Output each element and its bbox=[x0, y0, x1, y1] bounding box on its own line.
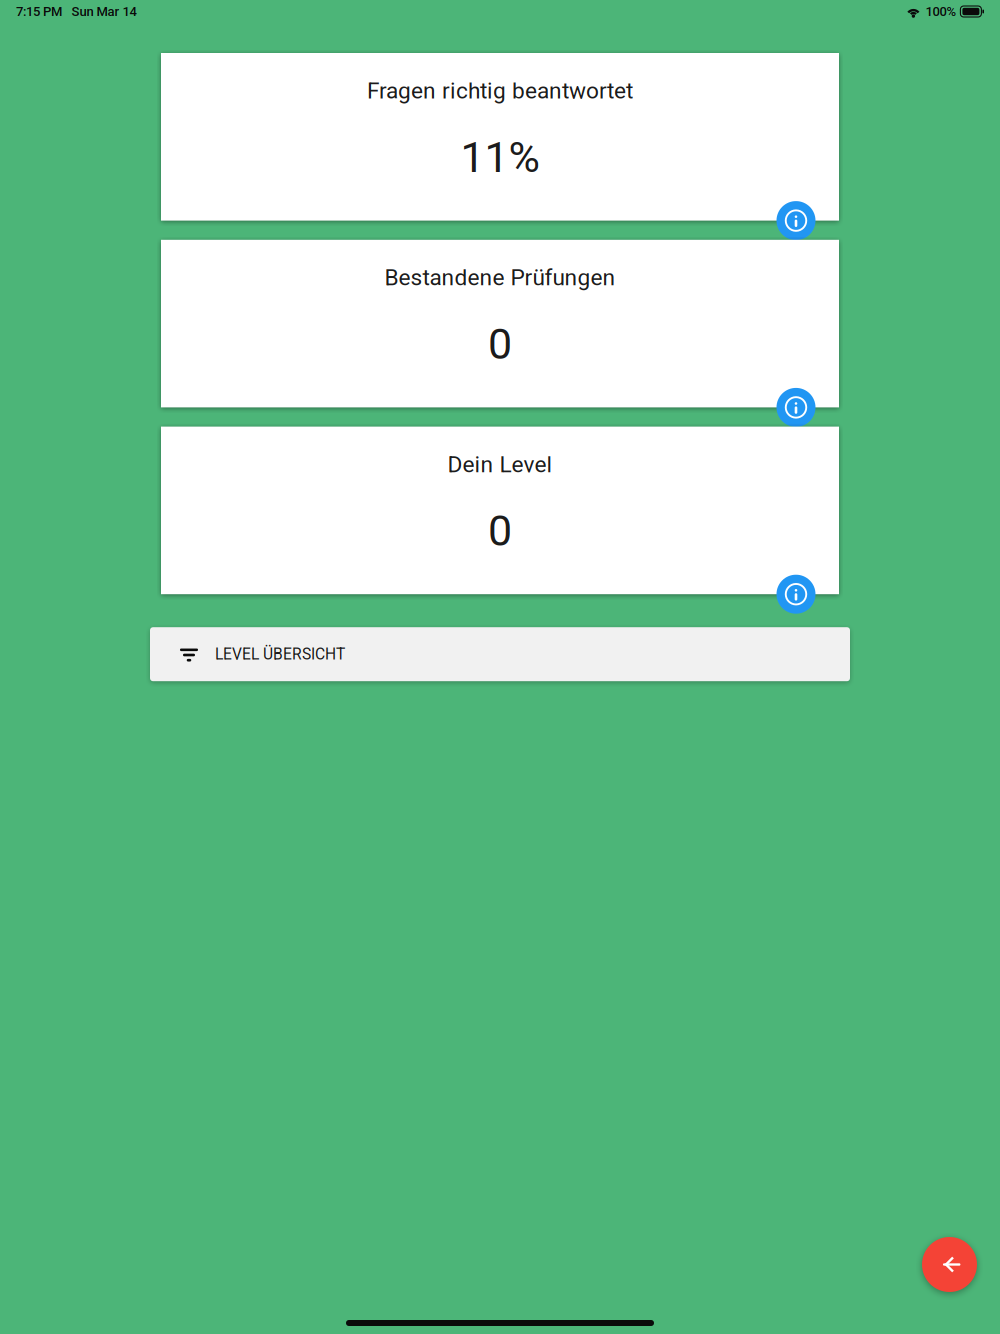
staticText: Fragen richtig beantwortet bbox=[367, 77, 633, 104]
button[interactable]: Info bbox=[776, 575, 815, 614]
staticText: Dein Level bbox=[447, 451, 552, 478]
staticText: 0 bbox=[488, 506, 512, 556]
staticText: 11% bbox=[460, 132, 539, 182]
staticText: LEVEL ÜBERSICHT bbox=[215, 645, 345, 663]
button[interactable]: Info bbox=[776, 388, 815, 427]
button[interactable]: LEVEL ÜBERSICHT bbox=[150, 627, 850, 681]
button[interactable]: Info bbox=[776, 201, 815, 240]
staticText: 100% bbox=[925, 4, 956, 19]
staticText: Bestandene Prüfungen bbox=[384, 264, 615, 291]
staticText: 0 bbox=[488, 319, 512, 369]
staticText: Sun Mar 14 bbox=[71, 4, 136, 19]
button[interactable]: Back bbox=[922, 1237, 977, 1292]
staticText: 7:15 PM bbox=[16, 4, 62, 19]
